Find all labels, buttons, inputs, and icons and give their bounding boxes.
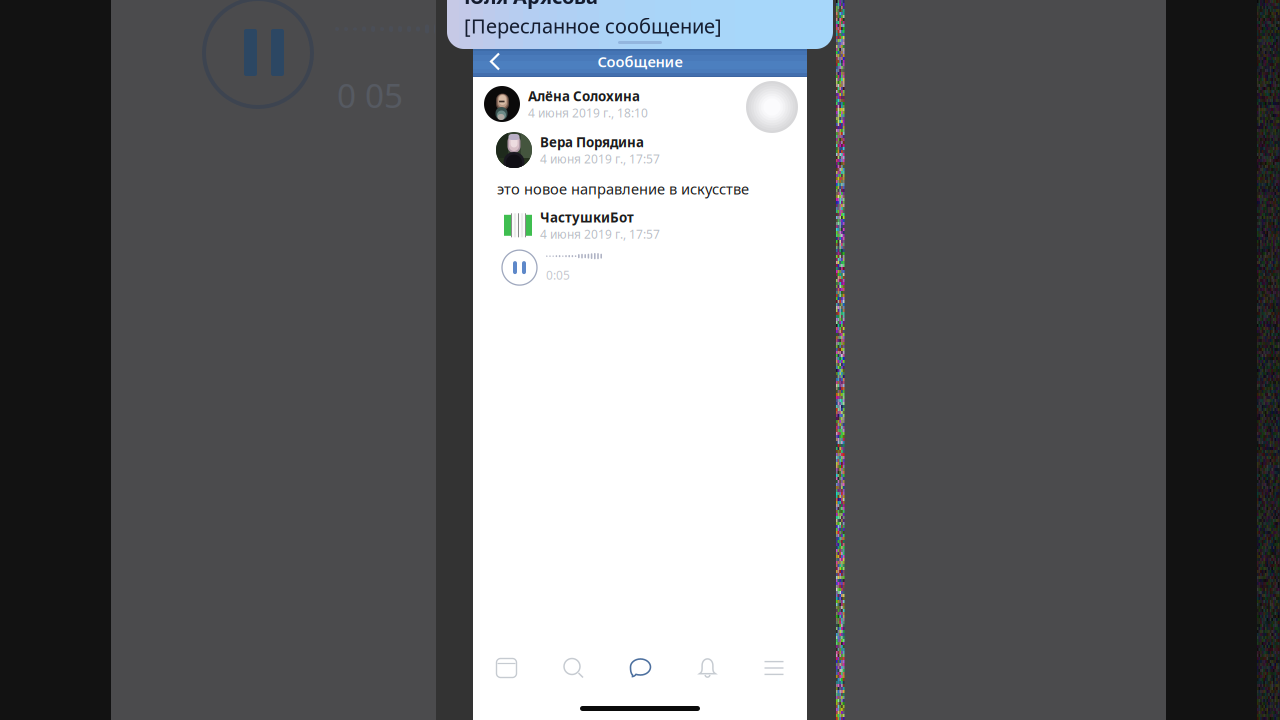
staticText: Вера Порядина	[540, 133, 644, 151]
staticText: 4 июня 2019 г., 17:57	[540, 151, 660, 167]
staticText: 4 июня 2019 г., 18:10	[528, 105, 648, 121]
staticText: Юля Арясова	[464, 0, 598, 10]
staticText: 0:05	[546, 267, 570, 283]
button[interactable]: Menu	[741, 645, 807, 691]
button[interactable]: Play audio message	[502, 250, 537, 285]
staticText: Алёна Солохина	[528, 87, 640, 105]
button[interactable]: Notifications	[674, 645, 741, 691]
staticText: это новое направление в искусстве	[497, 179, 749, 198]
staticText: 0 05	[337, 73, 403, 117]
button[interactable]: Messages	[607, 645, 674, 691]
button[interactable]: Search	[540, 645, 607, 691]
staticText: Сообщение	[597, 52, 682, 71]
button[interactable]: News	[473, 645, 540, 691]
button[interactable]: Back	[473, 46, 517, 77]
staticText: ЧастушкиБот	[540, 208, 634, 226]
staticText: [Пересланное сообщение]	[464, 13, 722, 39]
staticText: 4 июня 2019 г., 17:57	[540, 226, 660, 242]
